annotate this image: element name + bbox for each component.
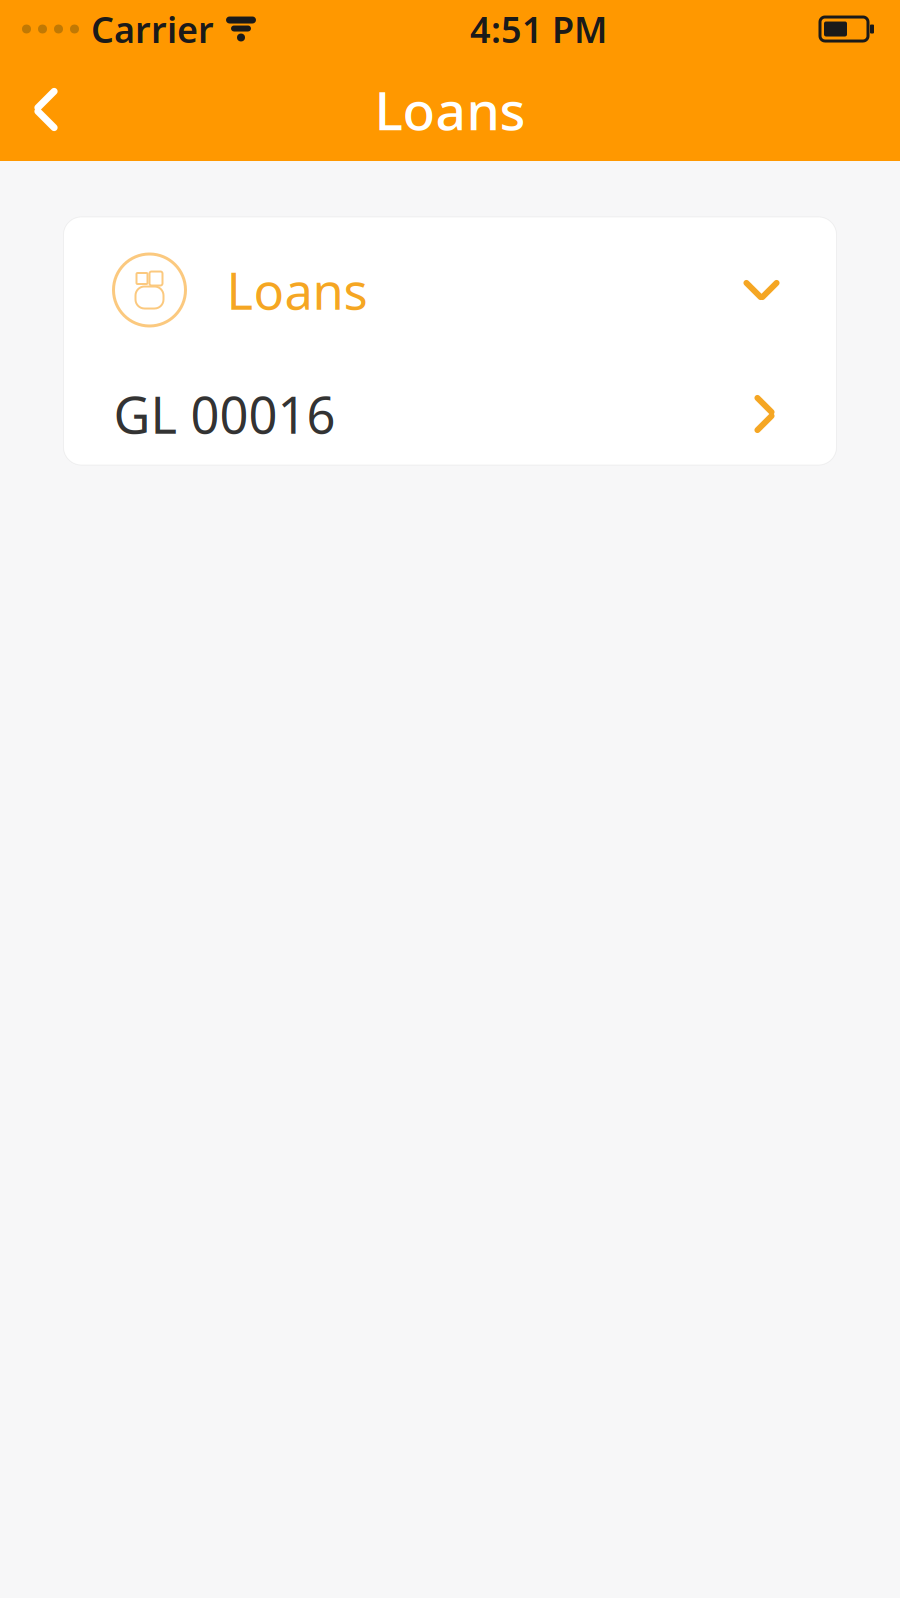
staticText: Loans — [226, 256, 367, 324]
button[interactable]: GL 00016 — [63, 363, 836, 465]
button[interactable]: Back — [0, 58, 92, 161]
staticText: Loans — [374, 74, 525, 145]
staticText: Carrier — [91, 5, 214, 53]
button[interactable]: Loans — [63, 217, 836, 363]
staticText: 4:51 PM — [470, 5, 607, 53]
staticText: GL 00016 — [113, 380, 335, 448]
